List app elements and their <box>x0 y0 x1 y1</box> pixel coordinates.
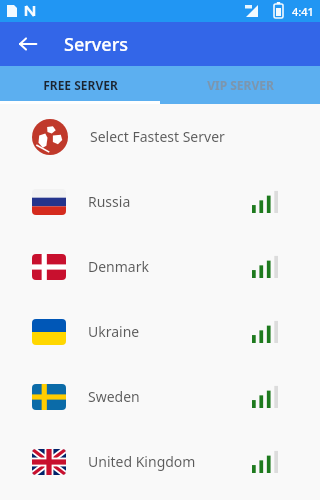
staticText: FREE SERVER <box>43 77 118 93</box>
button[interactable]: Back <box>8 24 48 64</box>
button[interactable]: Ukraine <box>0 299 320 364</box>
staticText: Ukraine <box>88 322 140 341</box>
staticText: Sweden <box>88 387 140 406</box>
button[interactable]: Denmark <box>0 234 320 299</box>
button[interactable]: FREE SERVER <box>0 66 160 104</box>
staticText: Servers <box>64 32 129 57</box>
button[interactable]: Sweden <box>0 364 320 429</box>
staticText: Denmark <box>88 257 149 276</box>
button[interactable]: Russia <box>0 169 320 234</box>
button[interactable]: United Kingdom <box>0 429 320 494</box>
staticText: United Kingdom <box>88 452 196 471</box>
staticText: VIP SERVER <box>207 77 274 93</box>
staticText: 4:41 <box>292 4 314 19</box>
staticText: Select Fastest Server <box>90 127 225 146</box>
button[interactable]: Select Fastest Server <box>0 104 320 169</box>
button[interactable]: VIP SERVER <box>160 66 320 104</box>
staticText: Russia <box>88 192 131 211</box>
